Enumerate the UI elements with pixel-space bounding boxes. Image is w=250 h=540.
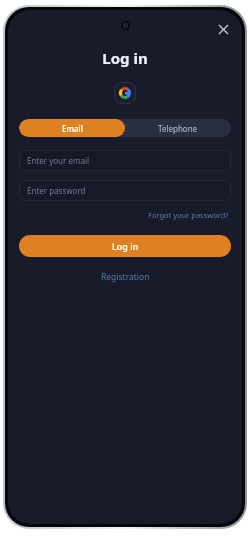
staticText: Email <box>62 123 83 134</box>
button[interactable]: Email <box>19 119 125 137</box>
staticText: Telephone <box>158 123 198 134</box>
button[interactable]: Enter your email <box>19 150 231 171</box>
button[interactable]: Close <box>210 16 236 42</box>
button[interactable]: Telephone <box>125 119 231 137</box>
button[interactable]: Forgot your password? <box>146 208 231 222</box>
button[interactable]: Sign in with Google <box>114 82 136 104</box>
staticText: Log in <box>112 240 139 252</box>
button[interactable]: Enter password <box>19 180 231 201</box>
staticText: Enter your email <box>27 155 90 166</box>
button[interactable]: Registration <box>97 269 154 285</box>
staticText: Log in <box>8 48 242 68</box>
staticText: Enter password <box>27 185 86 196</box>
staticText: Registration <box>101 271 150 283</box>
staticText: Forgot your password? <box>148 210 229 220</box>
button[interactable]: Log in <box>19 235 231 257</box>
